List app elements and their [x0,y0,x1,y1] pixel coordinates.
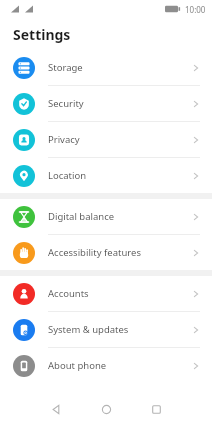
button[interactable]: System & updates [0,312,212,347]
staticText: Storage [48,61,83,74]
button[interactable]: Accessibility features [0,235,212,270]
staticText: Digital balance [48,210,115,223]
button[interactable]: Back [39,394,73,424]
button[interactable]: Storage [0,50,212,85]
staticText: Accessibility features [48,246,141,259]
staticText: Privacy [48,133,80,146]
staticText: Security [48,97,84,110]
button[interactable]: Privacy [0,122,212,157]
staticText: Settings [13,25,71,44]
staticText: Accounts [48,287,89,300]
button[interactable]: Location [0,158,212,193]
staticText: 10:00 [185,4,206,15]
button[interactable]: About phone [0,348,212,383]
button[interactable]: Recent apps [139,394,173,424]
button[interactable]: Home [89,394,123,424]
button[interactable]: Digital balance [0,199,212,234]
staticText: About phone [48,359,107,372]
staticText: System & updates [48,323,129,336]
button[interactable]: Security [0,86,212,121]
button[interactable]: Accounts [0,276,212,311]
staticText: Location [48,169,87,182]
